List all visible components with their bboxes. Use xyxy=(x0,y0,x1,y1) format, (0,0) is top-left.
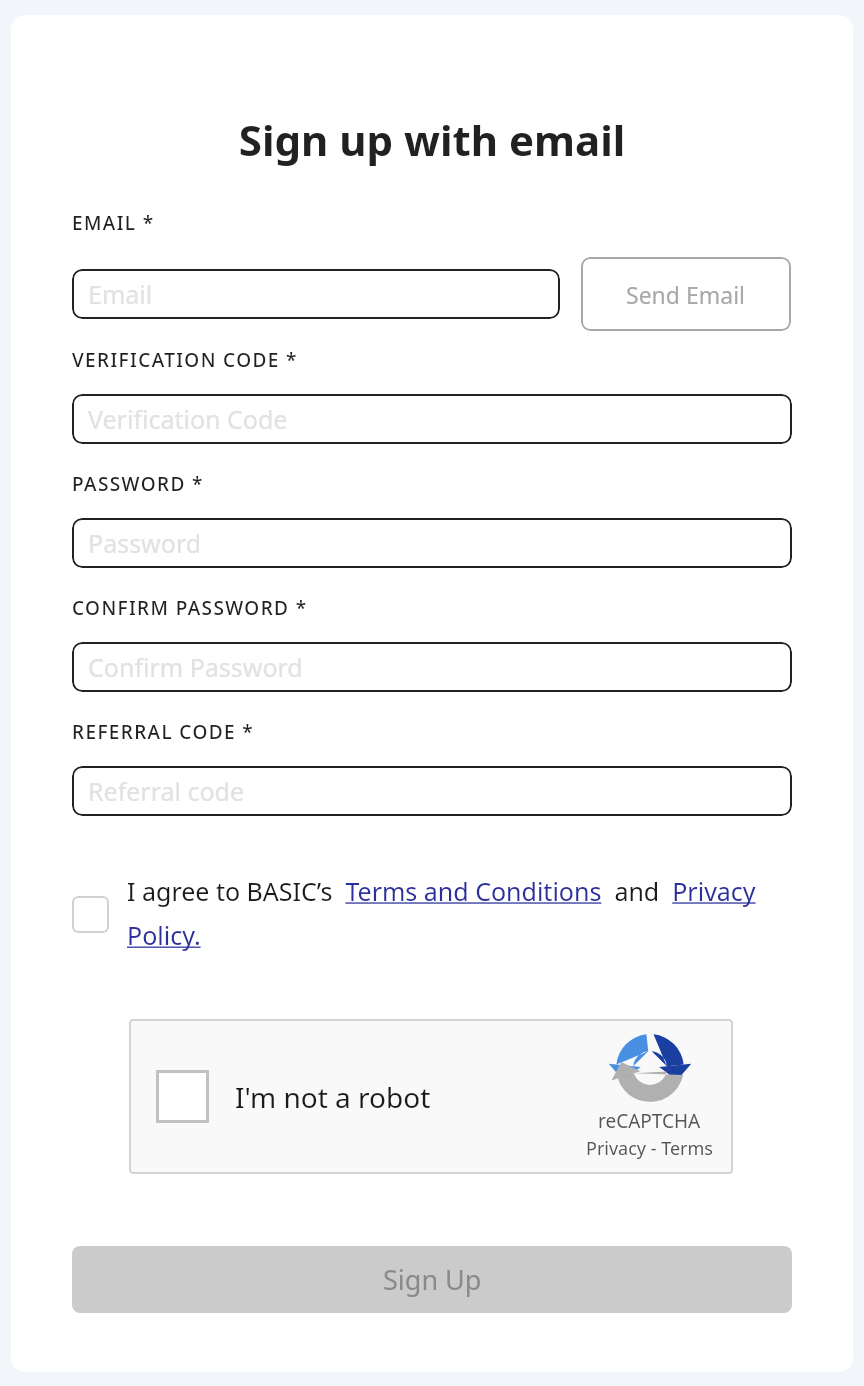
staticText: Referral code xyxy=(88,774,245,808)
button[interactable]: Email xyxy=(72,269,560,319)
staticText: Confirm Password xyxy=(88,650,303,684)
button[interactable]: Verification Code xyxy=(72,394,792,444)
button[interactable]: I agree to BASIC’s Terms and Conditions … xyxy=(127,874,792,952)
staticText: VERIFICATION CODE * xyxy=(72,347,298,373)
staticText: I'm not a robot xyxy=(235,1078,431,1116)
staticText: PASSWORD * xyxy=(72,471,204,497)
staticText: Sign Up xyxy=(383,1261,482,1298)
button[interactable]: Agree to terms checkbox xyxy=(72,896,109,933)
staticText: Verification Code xyxy=(88,402,288,436)
button[interactable]: Send Email xyxy=(581,257,791,331)
button[interactable]: Password xyxy=(72,518,792,568)
staticText: REFERRAL CODE * xyxy=(72,719,255,745)
staticText: Privacy - Terms xyxy=(586,1136,713,1161)
button[interactable]: Confirm Password xyxy=(72,642,792,692)
staticText: Password xyxy=(88,526,202,560)
button[interactable]: Referral code xyxy=(72,766,792,816)
staticText: EMAIL * xyxy=(72,210,155,236)
staticText: Email xyxy=(88,277,153,311)
staticText: Send Email xyxy=(626,279,746,310)
button[interactable]: I'm not a robot checkbox xyxy=(129,1019,733,1174)
other: I'm not a robot checkbox xyxy=(156,1070,209,1123)
staticText: CONFIRM PASSWORD * xyxy=(72,595,308,621)
button[interactable]: Sign Up xyxy=(72,1246,792,1313)
staticText: reCAPTCHA xyxy=(598,1108,701,1134)
staticText: Sign up with email xyxy=(11,111,853,168)
